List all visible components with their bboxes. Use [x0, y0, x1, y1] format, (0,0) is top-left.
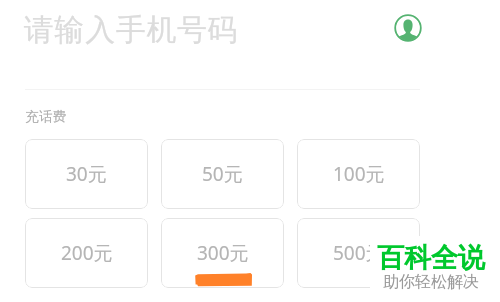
button[interactable]: 100元: [297, 139, 420, 209]
staticText: 请输入手机号码: [24, 11, 239, 49]
button[interactable]: 500元: [297, 218, 420, 288]
staticText: 500元: [333, 240, 385, 266]
staticText: 30元: [66, 161, 107, 187]
staticText: 100元: [333, 161, 385, 187]
staticText: 200元: [61, 240, 113, 266]
button[interactable]: 50元: [161, 139, 284, 209]
staticText: 百科全说: [377, 241, 485, 275]
button[interactable]: 300元: [161, 218, 284, 288]
staticText: 50元: [202, 161, 243, 187]
staticText: 充话费: [25, 108, 67, 125]
staticText: 助你轻松解决: [383, 272, 479, 292]
button[interactable]: 200元: [25, 218, 148, 288]
staticText: 300元: [197, 240, 249, 266]
button[interactable]: 请输入手机号码: [24, 0, 374, 88]
button[interactable]: 30元: [25, 139, 148, 209]
button[interactable]: Choose contact: [390, 10, 426, 46]
